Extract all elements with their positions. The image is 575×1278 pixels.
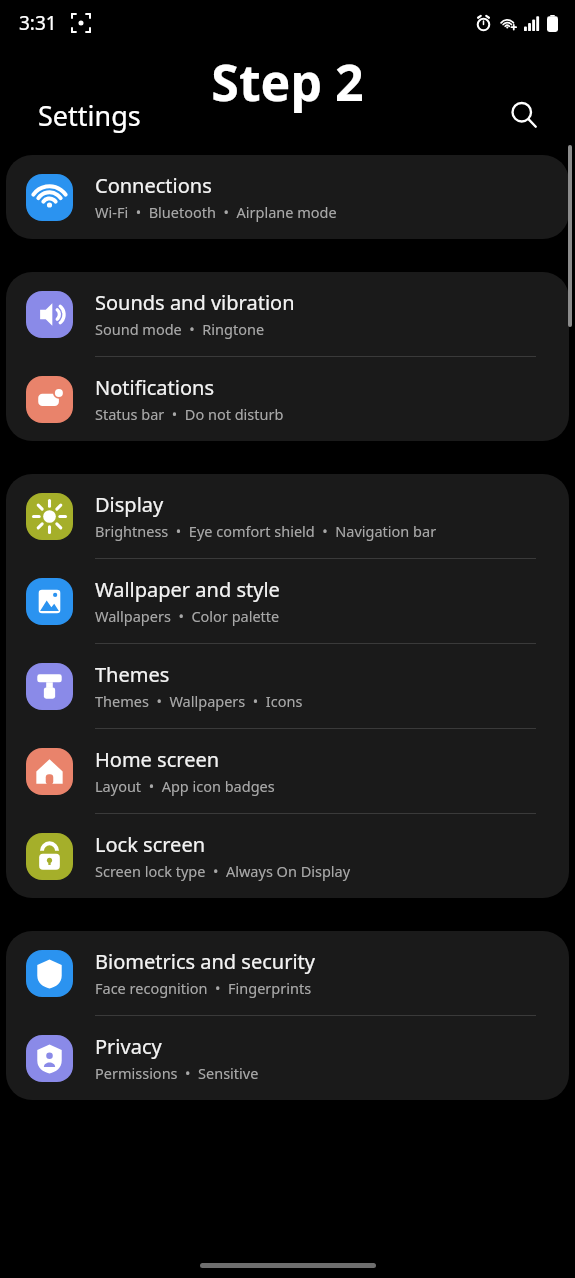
staticText: Themes: [95, 661, 170, 688]
button[interactable]: Notifications: [6, 357, 569, 441]
staticText: Home screen: [95, 746, 220, 773]
staticText: Lock screen: [95, 831, 206, 858]
staticText: Face recognition • Fingerprints: [95, 978, 312, 998]
staticText: Status bar • Do not disturb: [95, 404, 284, 424]
staticText: Sound mode • Ringtone: [95, 319, 265, 339]
staticText: Notifications: [95, 374, 214, 401]
button[interactable]: Search: [501, 92, 547, 138]
staticText: Step 2: [0, 48, 575, 116]
staticText: Layout • App icon badges: [95, 776, 275, 796]
staticText: Settings: [38, 97, 141, 134]
button[interactable]: Biometrics and security: [6, 931, 569, 1016]
button[interactable]: Lock screen: [6, 814, 569, 898]
staticText: Sounds and vibration: [95, 289, 295, 316]
staticText: Wallpaper and style: [95, 576, 280, 603]
staticText: 3:31: [19, 10, 57, 36]
button[interactable]: Sounds and vibration: [6, 272, 569, 357]
button[interactable]: Connections: [6, 155, 569, 239]
staticText: Wallpapers • Color palette: [95, 606, 280, 626]
staticText: Biometrics and security: [95, 948, 315, 975]
staticText: Wi-Fi • Bluetooth • Airplane mode: [95, 202, 337, 222]
staticText: Screen lock type • Always On Display: [95, 861, 351, 881]
button[interactable]: Home screen: [6, 729, 569, 814]
staticText: Permissions • Sensitive: [95, 1063, 259, 1083]
staticText: Display: [95, 491, 164, 518]
button[interactable]: Themes: [6, 644, 569, 729]
button[interactable]: Display: [6, 474, 569, 559]
button[interactable]: Privacy: [6, 1016, 569, 1100]
staticText: Themes • Wallpapers • Icons: [95, 691, 303, 711]
staticText: Connections: [95, 172, 212, 199]
button[interactable]: Wallpaper and style: [6, 559, 569, 644]
staticText: Privacy: [95, 1033, 162, 1060]
staticText: Brightness • Eye comfort shield • Naviga…: [95, 521, 437, 541]
